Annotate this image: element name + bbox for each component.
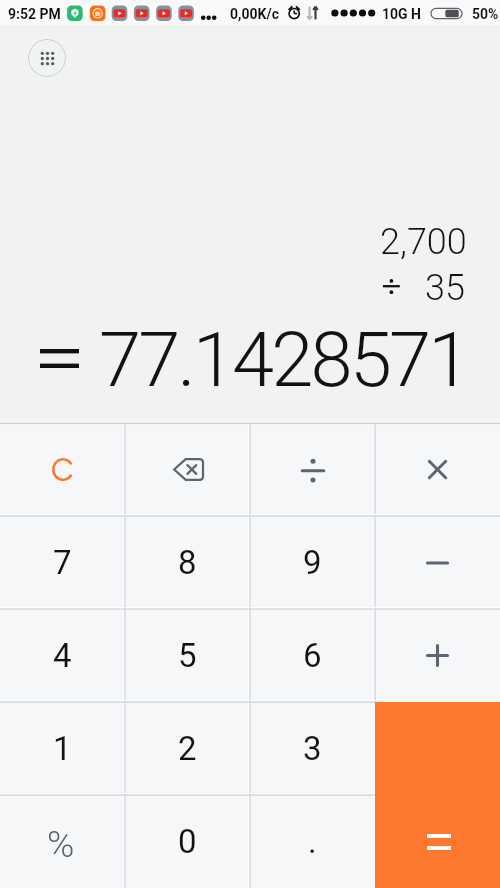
button[interactable]: 1 bbox=[0, 702, 125, 795]
button[interactable]: Divide bbox=[250, 423, 375, 516]
staticText: 6 bbox=[303, 636, 322, 675]
staticText: 77.1428571 bbox=[99, 315, 468, 404]
staticText: 0 bbox=[178, 822, 197, 861]
button[interactable]: Decimal point bbox=[250, 795, 375, 888]
staticText: 0,00K/c bbox=[230, 6, 279, 22]
staticText: 50% bbox=[472, 6, 499, 22]
button[interactable]: Equals bbox=[375, 702, 500, 888]
staticText: 4 bbox=[53, 636, 72, 675]
staticText: 2 bbox=[178, 729, 197, 768]
staticText: 5 bbox=[178, 636, 197, 675]
staticText: 9:52 PM bbox=[8, 6, 61, 22]
button[interactable]: Percent bbox=[0, 795, 125, 888]
staticText: 10G H bbox=[382, 6, 421, 22]
staticText: 1 bbox=[53, 729, 72, 768]
staticText: % bbox=[47, 823, 75, 866]
staticText: 8 bbox=[178, 543, 197, 582]
button[interactable]: 4 bbox=[0, 609, 125, 702]
staticText: . bbox=[308, 822, 317, 861]
button[interactable]: 6 bbox=[250, 609, 375, 702]
button[interactable]: Clear bbox=[0, 423, 125, 516]
button[interactable]: Backspace bbox=[125, 423, 250, 516]
button[interactable]: 0 bbox=[125, 795, 250, 888]
staticText: 2,700 bbox=[380, 221, 467, 263]
button[interactable]: 3 bbox=[250, 702, 375, 795]
staticText: 7 bbox=[53, 543, 72, 582]
button[interactable]: 7 bbox=[0, 516, 125, 609]
button[interactable]: 5 bbox=[125, 609, 250, 702]
staticText: 35 bbox=[425, 267, 465, 309]
button[interactable]: 9 bbox=[250, 516, 375, 609]
staticText: 9 bbox=[303, 543, 322, 582]
button[interactable]: Plus bbox=[375, 609, 500, 702]
button[interactable]: 8 bbox=[125, 516, 250, 609]
button[interactable]: 2 bbox=[125, 702, 250, 795]
button[interactable]: Multiply bbox=[375, 423, 500, 516]
button[interactable]: Scientific keypad bbox=[28, 39, 66, 77]
button[interactable]: Minus bbox=[375, 516, 500, 609]
staticText: 3 bbox=[303, 729, 322, 768]
